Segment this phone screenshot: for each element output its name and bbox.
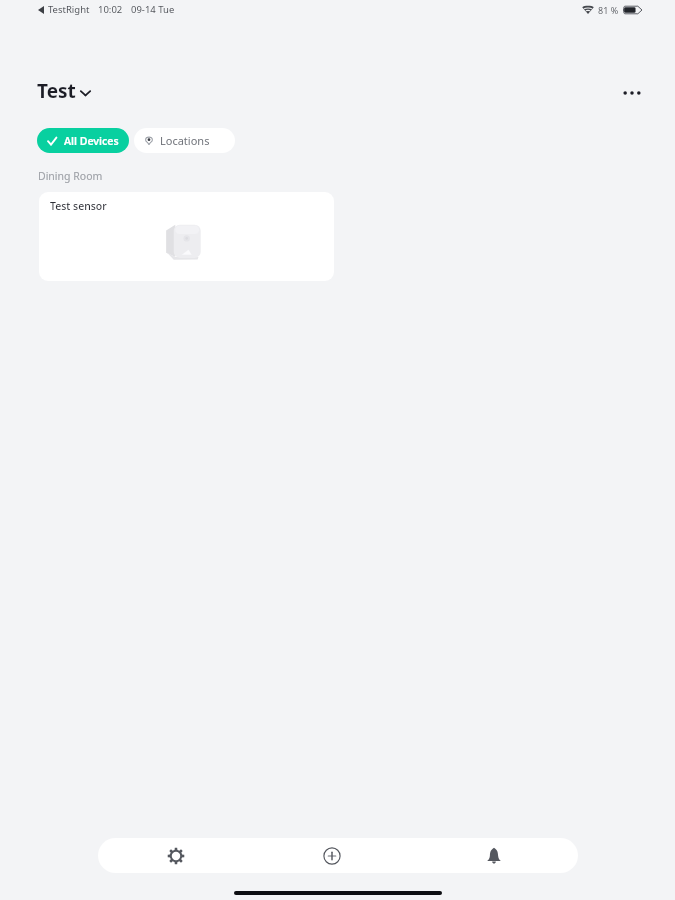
button[interactable]: Test: [34, 75, 98, 107]
staticText: 81 %: [598, 4, 619, 16]
button[interactable]: More options: [614, 75, 650, 111]
button[interactable]: Add device: [308, 838, 356, 873]
staticText: 09-14 Tue: [131, 3, 175, 16]
button[interactable]: Test sensor: [39, 192, 334, 281]
staticText: Locations: [160, 133, 210, 148]
staticText: All Devices: [64, 134, 119, 148]
staticText: Dining Room: [38, 169, 103, 183]
staticText: Test: [37, 78, 76, 104]
staticText: TestRight: [48, 3, 90, 16]
button[interactable]: Settings: [152, 838, 200, 873]
staticText: Test sensor: [50, 199, 107, 213]
staticText: 10:02: [98, 3, 123, 16]
button[interactable]: Locations: [134, 128, 235, 153]
button[interactable]: Notifications: [470, 838, 518, 873]
button[interactable]: All Devices: [37, 128, 129, 153]
